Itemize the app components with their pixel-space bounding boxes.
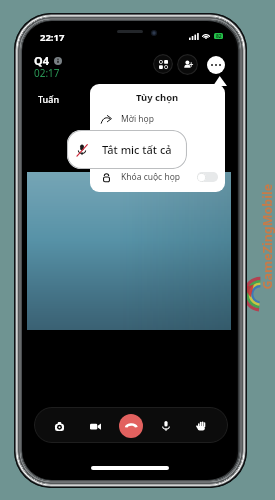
button[interactable]: Raise hand [188, 413, 214, 439]
staticText: Mời họp [121, 113, 154, 125]
staticText: Khóa cuộc họp [121, 171, 181, 183]
staticText: Tắt mic tất cả [102, 142, 172, 157]
staticText: 22:17 [40, 31, 65, 44]
staticText: 82 [216, 33, 222, 39]
staticText: 02:17 [34, 66, 60, 80]
button[interactable]: Mời họp [90, 109, 225, 129]
button[interactable]: Stop video [82, 413, 108, 439]
staticText: Tùy chọn [136, 91, 179, 104]
staticText: GameZingMobile [258, 183, 275, 289]
button[interactable]: Mute microphone [153, 413, 179, 439]
staticText: Tuấn [38, 93, 60, 105]
button[interactable]: Tắt mic tất cả [67, 130, 187, 169]
button[interactable]: Meeting info [54, 57, 62, 65]
button[interactable]: Switch camera [46, 413, 72, 439]
staticText: Q4 [34, 53, 49, 68]
button[interactable]: Grid layout [153, 54, 173, 74]
button[interactable]: End call [119, 414, 143, 438]
button[interactable]: Participants [177, 54, 198, 75]
button[interactable]: Khóa cuộc họp [90, 166, 225, 188]
button[interactable]: More options [207, 56, 225, 74]
